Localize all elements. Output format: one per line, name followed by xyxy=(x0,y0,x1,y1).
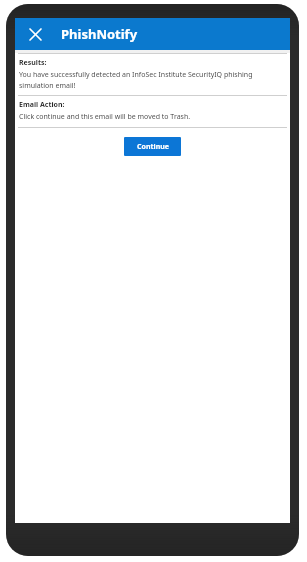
button[interactable]: Close xyxy=(23,22,47,46)
staticText: Click continue and this email will be mo… xyxy=(19,112,286,122)
staticText: Results: xyxy=(19,58,47,68)
staticText: Email Action: xyxy=(19,100,65,110)
staticText: Continue xyxy=(137,142,169,152)
button[interactable]: Continue xyxy=(124,137,181,156)
staticText: You have successfully detected an InfoSe… xyxy=(19,70,286,90)
staticText: PhishNotify xyxy=(61,25,138,43)
